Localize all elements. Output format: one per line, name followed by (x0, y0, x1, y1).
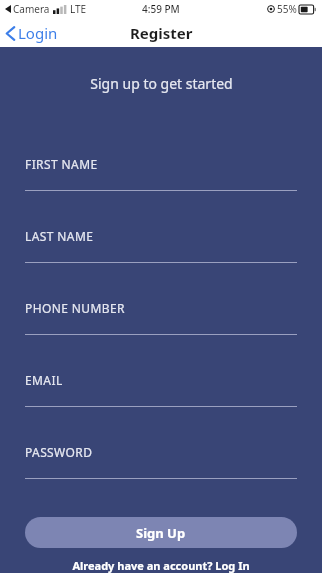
button[interactable]: PHONE NUMBER (0, 282, 322, 354)
staticText: Sign Up (136, 524, 186, 542)
staticText: Register (130, 23, 193, 43)
staticText: Login (18, 23, 58, 43)
button[interactable]: Already have an account? Log In (64, 555, 258, 573)
staticText: 4:59 PM (142, 2, 180, 16)
button[interactable]: LAST NAME (0, 210, 322, 282)
staticText: Already have an account? Log In (72, 558, 250, 573)
staticText: FIRST NAME (25, 156, 98, 172)
staticText: Camera (13, 2, 50, 16)
staticText: PHONE NUMBER (25, 300, 125, 316)
staticText: 55% (277, 2, 297, 16)
staticText: EMAIL (25, 372, 63, 388)
staticText: LAST NAME (25, 228, 94, 244)
button[interactable]: PASSWORD (0, 426, 322, 498)
staticText: Sign up to get started (90, 74, 233, 93)
button[interactable]: Sign Up (25, 517, 297, 548)
staticText: PASSWORD (25, 444, 93, 460)
button[interactable]: EMAIL (0, 354, 322, 426)
staticText: LTE (70, 2, 87, 16)
button[interactable]: Login (0, 19, 68, 47)
button[interactable]: FIRST NAME (0, 138, 322, 210)
